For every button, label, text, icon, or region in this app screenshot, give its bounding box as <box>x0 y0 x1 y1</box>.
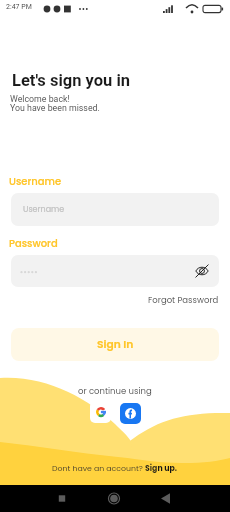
button[interactable]: Username <box>11 193 219 226</box>
staticText: Welcome back! <box>10 94 70 104</box>
button[interactable]: Sign in with Facebook <box>120 403 141 424</box>
button[interactable]: Show password <box>195 264 209 278</box>
button[interactable]: Sign in with Google <box>90 401 111 423</box>
button[interactable]: Sign In <box>11 328 219 361</box>
button[interactable]: Forgot Password <box>148 294 219 306</box>
staticText: or continue using <box>78 385 152 397</box>
button[interactable]: Dont have an account? Sign up. <box>52 463 178 474</box>
staticText: Let's sign you in <box>12 71 131 90</box>
staticText: Password <box>9 236 58 250</box>
staticText: 2:47 PM <box>6 3 32 11</box>
staticText: Username <box>9 174 62 188</box>
staticText: Username <box>23 204 65 215</box>
button[interactable]: Show password <box>11 255 219 287</box>
staticText: You have been missed. <box>10 103 100 113</box>
staticText: Sign In <box>97 337 134 352</box>
